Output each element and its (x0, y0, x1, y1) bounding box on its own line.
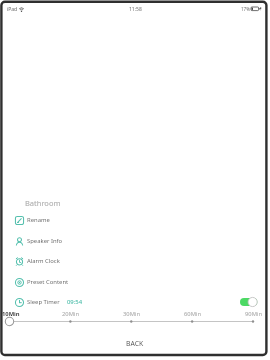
staticText: Speaker Info (27, 237, 63, 245)
staticText: 90Min (245, 310, 262, 318)
button[interactable] (240, 297, 259, 307)
staticText: 11:58 (129, 6, 142, 13)
staticText: 60Min (184, 310, 201, 318)
staticText: Alarm Clock (27, 257, 60, 265)
button[interactable]: Speaker Info (8, 231, 262, 251)
button[interactable]: Rename (8, 210, 262, 230)
staticText: iPad (7, 6, 18, 13)
button[interactable]: BACK (105, 334, 165, 352)
staticText: 20Min (62, 310, 79, 318)
staticText: Sleep Timer (27, 298, 60, 306)
staticText: 10Min (2, 310, 20, 318)
staticText: Rename (27, 216, 50, 224)
staticText: 30Min (123, 310, 140, 318)
staticText: Preset Content (27, 278, 69, 286)
button[interactable]: Alarm Clock (8, 251, 262, 271)
staticText: 17% (241, 6, 250, 12)
button[interactable]: Preset Content (8, 272, 262, 292)
staticText: 09:54 (67, 298, 83, 306)
button[interactable] (0, 313, 262, 330)
button[interactable]: Sleep Timer (8, 292, 262, 312)
staticText: Bathroom (25, 198, 61, 208)
staticText: BACK (126, 339, 144, 348)
